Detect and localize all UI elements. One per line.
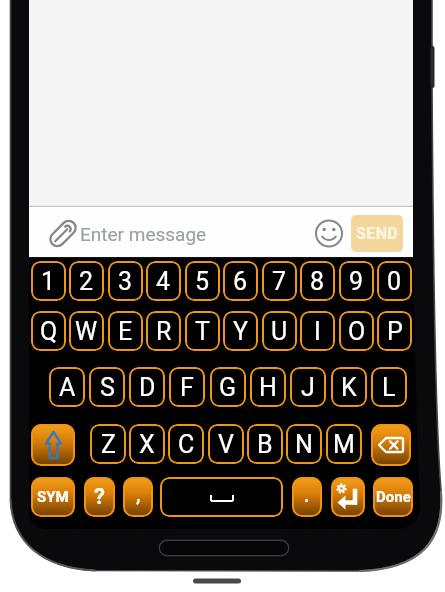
staticText: 8 bbox=[310, 267, 325, 296]
staticText: T bbox=[195, 317, 210, 346]
button[interactable] bbox=[371, 424, 411, 466]
button[interactable]: N bbox=[286, 424, 322, 464]
staticText: SEND bbox=[356, 224, 399, 243]
staticText: 4 bbox=[156, 267, 171, 296]
button[interactable]: M bbox=[326, 424, 362, 464]
button[interactable]: S bbox=[89, 367, 125, 407]
staticText: Z bbox=[101, 430, 116, 459]
button[interactable]: T bbox=[185, 311, 220, 351]
staticText: X bbox=[139, 430, 155, 459]
staticText: R bbox=[156, 317, 172, 346]
staticText: L bbox=[382, 373, 396, 402]
staticText: F bbox=[180, 373, 194, 402]
button[interactable]: G bbox=[210, 367, 246, 407]
staticText: 2 bbox=[79, 267, 94, 296]
staticText: 6 bbox=[233, 267, 248, 296]
staticText: . bbox=[304, 485, 310, 506]
button[interactable]: 1 bbox=[31, 261, 66, 301]
button[interactable] bbox=[331, 477, 365, 517]
button[interactable]: U bbox=[262, 311, 297, 351]
button[interactable]: 0 bbox=[377, 261, 412, 301]
staticText: G bbox=[219, 373, 237, 402]
button[interactable]: P bbox=[377, 311, 412, 351]
staticText: Y bbox=[233, 317, 249, 346]
button[interactable]: 6 bbox=[223, 261, 258, 301]
staticText: D bbox=[139, 373, 156, 402]
button[interactable]: D bbox=[129, 367, 165, 407]
staticText: 7 bbox=[272, 267, 287, 296]
staticText: E bbox=[118, 317, 133, 346]
button[interactable]: 8 bbox=[300, 261, 335, 301]
button[interactable]: SEND bbox=[351, 215, 403, 252]
staticText: U bbox=[271, 317, 288, 346]
staticText: W bbox=[75, 317, 98, 346]
button[interactable]: W bbox=[69, 311, 104, 351]
staticText: M bbox=[333, 430, 355, 459]
staticText: 1 bbox=[41, 267, 56, 296]
button[interactable]: E bbox=[108, 311, 143, 351]
button[interactable]: A bbox=[49, 367, 85, 407]
button[interactable]: J bbox=[290, 367, 326, 407]
staticText: ? bbox=[94, 484, 105, 510]
button[interactable]: V bbox=[208, 424, 244, 464]
staticText: H bbox=[259, 373, 277, 402]
staticText: 3 bbox=[118, 267, 133, 296]
button[interactable]: 4 bbox=[146, 261, 181, 301]
button[interactable] bbox=[160, 477, 283, 517]
staticText: S bbox=[100, 373, 115, 402]
button[interactable]: O bbox=[339, 311, 374, 351]
button[interactable]: Y bbox=[223, 311, 258, 351]
staticText: A bbox=[59, 373, 76, 402]
staticText: V bbox=[218, 430, 234, 459]
button[interactable]: K bbox=[331, 367, 367, 407]
button[interactable]: SYM bbox=[31, 477, 75, 517]
staticText: N bbox=[295, 430, 313, 459]
button[interactable]: ? bbox=[84, 477, 115, 517]
button[interactable]: Q bbox=[31, 311, 66, 351]
button[interactable] bbox=[31, 424, 75, 466]
button[interactable]: Done bbox=[373, 477, 413, 517]
button[interactable]: X bbox=[129, 424, 165, 464]
button[interactable]: . bbox=[292, 477, 322, 517]
staticText: B bbox=[257, 430, 273, 459]
button[interactable] bbox=[315, 219, 343, 248]
staticText: J bbox=[301, 373, 315, 402]
staticText: I bbox=[314, 317, 321, 346]
staticText: 5 bbox=[195, 267, 210, 296]
button[interactable]: B bbox=[247, 424, 283, 464]
button[interactable]: 9 bbox=[339, 261, 374, 301]
button[interactable]: 5 bbox=[185, 261, 220, 301]
staticText: Enter message bbox=[80, 223, 207, 245]
staticText: 0 bbox=[387, 267, 402, 296]
button[interactable]: 7 bbox=[262, 261, 297, 301]
button[interactable]: L bbox=[371, 367, 407, 407]
button[interactable]: H bbox=[250, 367, 286, 407]
button[interactable]: I bbox=[300, 311, 335, 351]
button[interactable]: Enter message bbox=[80, 220, 280, 248]
staticText: SYM bbox=[37, 488, 69, 506]
staticText: K bbox=[341, 373, 357, 402]
button[interactable]: C bbox=[168, 424, 204, 464]
button[interactable] bbox=[49, 219, 79, 248]
staticText: P bbox=[387, 317, 403, 346]
button[interactable]: R bbox=[146, 311, 181, 351]
button[interactable]: Z bbox=[90, 424, 126, 464]
staticText: Q bbox=[40, 317, 58, 346]
button[interactable]: 2 bbox=[69, 261, 104, 301]
button[interactable]: , bbox=[123, 477, 153, 517]
staticText: , bbox=[136, 482, 141, 505]
button[interactable]: F bbox=[169, 367, 205, 407]
button[interactable] bbox=[29, 206, 413, 257]
staticText: O bbox=[348, 317, 366, 346]
staticText: C bbox=[178, 430, 195, 459]
staticText: 9 bbox=[349, 267, 364, 296]
button[interactable]: 3 bbox=[108, 261, 143, 301]
staticText: Done bbox=[376, 488, 411, 506]
